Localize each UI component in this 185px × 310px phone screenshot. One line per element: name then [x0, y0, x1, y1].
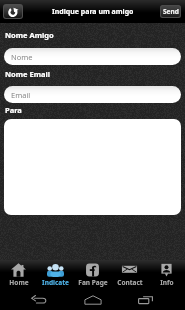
button[interactable]: Info [148, 260, 185, 287]
button[interactable]: Back [30, 293, 47, 306]
button[interactable]: Home [83, 293, 102, 306]
button[interactable]: Recents [137, 293, 154, 306]
staticText: Indique para um amigo [52, 7, 134, 17]
button[interactable]: Send [161, 6, 180, 17]
staticText: Nome Amigo [5, 30, 54, 40]
staticText: Fan Page [78, 278, 108, 287]
staticText: Info [160, 278, 174, 287]
staticText: Home [9, 278, 29, 287]
staticText: Email [11, 90, 31, 100]
staticText: Nome Email [5, 69, 51, 79]
button[interactable]: Refresh [4, 5, 22, 18]
button[interactable]: Nome [4, 48, 181, 65]
staticText: Contact [117, 278, 143, 287]
staticText: Send [163, 7, 179, 16]
button[interactable]: Fan Page [74, 260, 111, 287]
staticText: Indicate [42, 278, 69, 287]
button[interactable]: Contact [111, 260, 148, 287]
staticText: Para [5, 105, 22, 115]
staticText: Nome [11, 52, 33, 62]
button[interactable]: Email [4, 86, 181, 103]
button[interactable] [4, 119, 181, 215]
button[interactable]: Home [0, 260, 37, 287]
button[interactable]: Indicate [37, 260, 74, 287]
